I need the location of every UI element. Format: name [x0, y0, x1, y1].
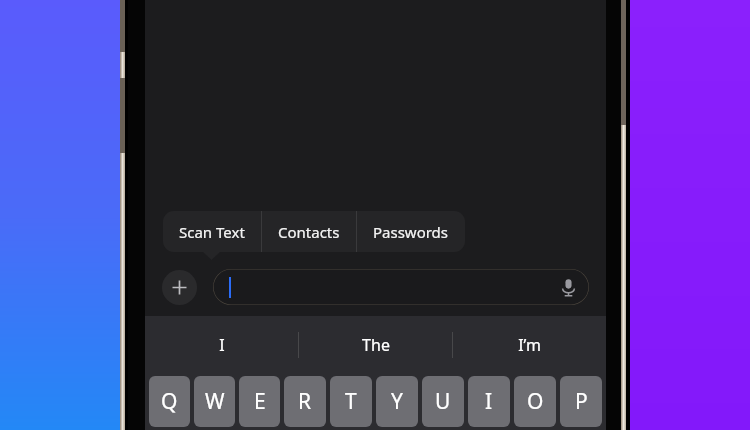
- button[interactable]: Dictate: [213, 269, 589, 305]
- staticText: P: [575, 387, 588, 416]
- staticText: U: [435, 387, 451, 416]
- button[interactable]: O: [514, 376, 556, 427]
- button[interactable]: T: [330, 376, 372, 427]
- button[interactable]: U: [422, 376, 464, 427]
- button[interactable]: Passwords: [357, 211, 465, 252]
- button[interactable]: I: [145, 316, 298, 373]
- staticText: I: [219, 334, 225, 356]
- button[interactable]: E: [239, 376, 280, 427]
- staticText: I: [485, 387, 493, 416]
- staticText: E: [254, 387, 266, 416]
- button[interactable]: I: [468, 376, 510, 427]
- button[interactable]: Add attachment: [162, 270, 197, 305]
- button[interactable]: Y: [376, 376, 418, 427]
- staticText: Contacts: [278, 222, 340, 242]
- staticText: Passwords: [373, 222, 449, 242]
- staticText: T: [345, 387, 357, 416]
- button[interactable]: R: [284, 376, 326, 427]
- button[interactable]: I’m: [453, 316, 606, 373]
- button[interactable]: P: [560, 376, 602, 427]
- staticText: The: [362, 334, 390, 356]
- staticText: W: [205, 387, 225, 416]
- button[interactable]: The: [299, 316, 452, 373]
- staticText: I’m: [518, 334, 541, 356]
- staticText: Y: [391, 387, 403, 416]
- button[interactable]: Contacts: [262, 211, 356, 252]
- button[interactable]: Scan Text: [163, 211, 261, 252]
- button[interactable]: Q: [149, 376, 190, 427]
- staticText: Scan Text: [179, 222, 245, 242]
- staticText: Q: [161, 387, 178, 416]
- staticText: R: [298, 387, 312, 416]
- button[interactable]: W: [194, 376, 235, 427]
- button[interactable]: Dictate: [555, 274, 581, 300]
- staticText: O: [527, 387, 544, 416]
